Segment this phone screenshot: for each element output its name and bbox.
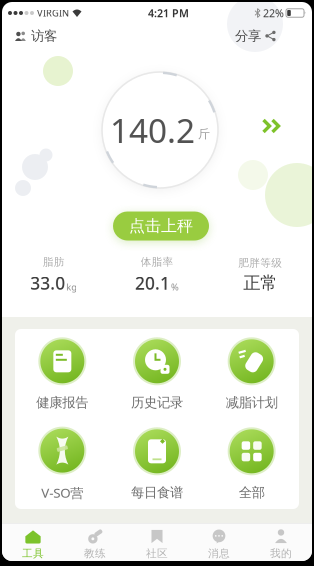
button[interactable]: 我的 xyxy=(250,525,312,560)
button[interactable]: 点击上秤 xyxy=(113,211,209,240)
button[interactable]: 更多 xyxy=(262,118,282,133)
staticText: 33.0 xyxy=(30,271,65,294)
button[interactable]: V-SO营 xyxy=(15,419,110,509)
staticText: 我的 xyxy=(270,547,292,560)
staticText: kg xyxy=(66,281,77,293)
button[interactable]: 每日食谱 xyxy=(110,419,204,509)
staticText: 140.2 xyxy=(110,108,195,152)
staticText: 斤 xyxy=(198,127,210,141)
staticText: 访客 xyxy=(31,28,57,44)
staticText: 全部 xyxy=(239,484,265,501)
staticText: 正常 xyxy=(243,272,277,294)
staticText: 工具 xyxy=(22,547,44,560)
button[interactable]: 分享 xyxy=(235,28,276,44)
staticText: VIRGIN xyxy=(37,7,69,19)
staticText: 体脂率 xyxy=(140,255,173,268)
staticText: % xyxy=(171,281,179,293)
staticText: 肥胖等级 xyxy=(238,256,282,269)
staticText: 点击上秤 xyxy=(129,216,193,236)
button[interactable]: 社区 xyxy=(126,525,188,560)
staticText: 消息 xyxy=(208,547,230,560)
staticText: 减脂计划 xyxy=(226,394,278,411)
button[interactable]: 全部 xyxy=(204,419,299,509)
staticText: V-SO营 xyxy=(41,484,83,501)
staticText: 社区 xyxy=(146,547,168,560)
staticText: 22% xyxy=(263,6,284,20)
staticText: 每日食谱 xyxy=(131,484,183,501)
staticText: 4:21 PM xyxy=(148,6,189,20)
staticText: 健康报告 xyxy=(36,394,88,411)
button[interactable]: 消息 xyxy=(188,525,250,560)
staticText: 历史记录 xyxy=(131,394,183,411)
staticText: 20.1 xyxy=(135,271,170,294)
staticText: 脂肪 xyxy=(43,255,65,268)
button[interactable]: 健康报告 xyxy=(15,329,110,419)
button[interactable]: 工具 xyxy=(2,525,64,560)
button[interactable]: 教练 xyxy=(64,525,126,560)
button[interactable]: 历史记录 xyxy=(110,329,204,419)
button[interactable]: 减脂计划 xyxy=(204,329,299,419)
staticText: 教练 xyxy=(84,547,106,560)
button[interactable]: 访客 xyxy=(14,28,57,44)
staticText: 分享 xyxy=(235,28,261,44)
